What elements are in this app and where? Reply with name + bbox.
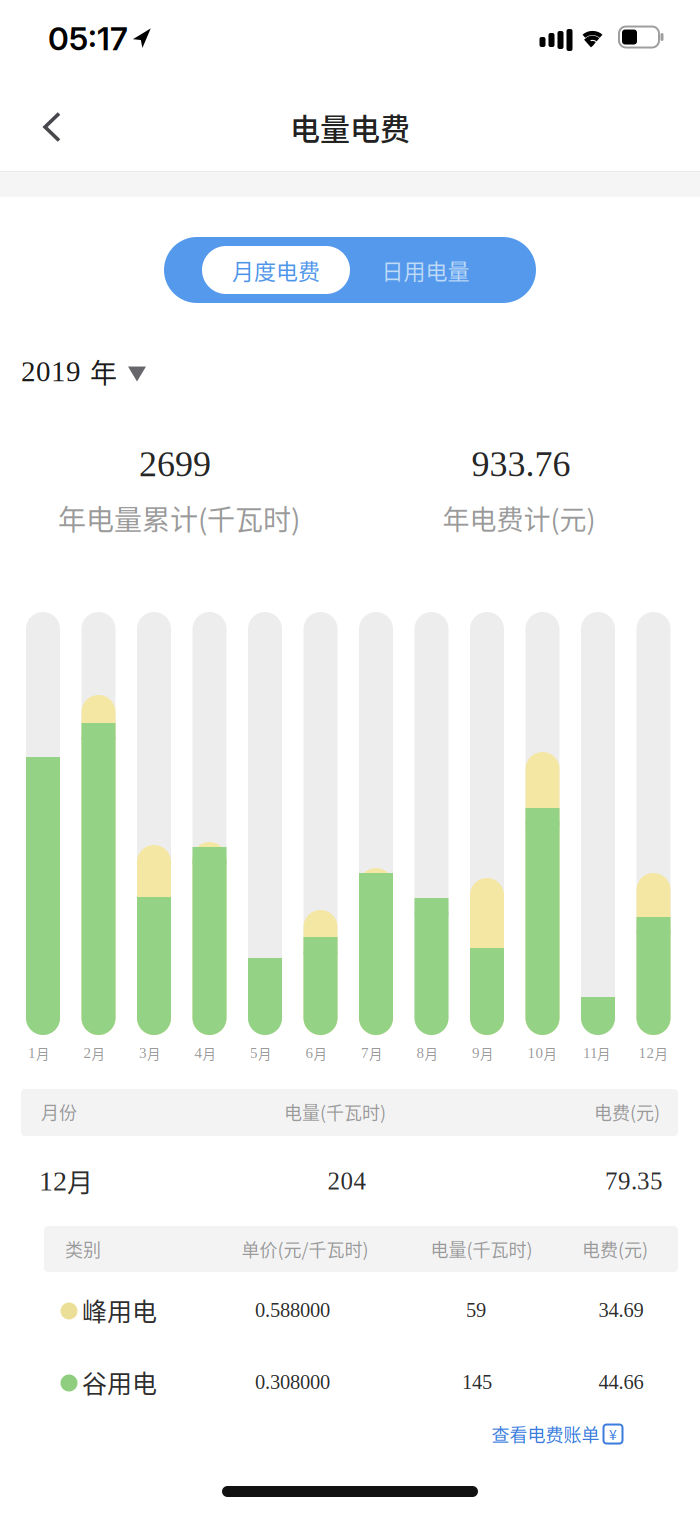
staticText: 月 <box>202 1043 215 1063</box>
staticText: 月 <box>369 1043 382 1063</box>
staticText: 电量(千瓦时) <box>284 1099 386 1125</box>
staticText: 月 <box>480 1043 493 1063</box>
button[interactable]: 查看电费账单 <box>491 1421 622 1447</box>
staticText: 查看电费账单 <box>491 1421 599 1447</box>
staticText: 4 <box>194 1045 202 1061</box>
staticText: 年电费计(元) <box>442 498 595 538</box>
staticText: 单价(元/千瓦时) <box>241 1236 368 1262</box>
button[interactable]: 日用电量 <box>351 246 499 294</box>
button[interactable]: 月度电费 <box>202 246 350 294</box>
staticText: 月 <box>543 1043 556 1063</box>
staticText: 月 <box>147 1043 160 1063</box>
staticText: 3 <box>139 1045 147 1061</box>
staticText: 9 <box>472 1045 480 1061</box>
staticText: 月份 <box>41 1099 77 1125</box>
staticText: 204 <box>327 1167 366 1195</box>
staticText: 7 <box>361 1045 369 1061</box>
staticText: 年电量累计(千瓦时) <box>58 498 300 538</box>
staticText: 月 <box>654 1043 667 1063</box>
staticText: 44.66 <box>598 1371 643 1393</box>
staticText: 日用电量 <box>381 254 469 286</box>
staticText: 电量(千瓦时) <box>430 1236 532 1262</box>
staticText: 年 <box>90 352 117 391</box>
staticText: 5 <box>250 1045 258 1061</box>
staticText: 0.588000 <box>255 1299 330 1321</box>
staticText: ¥ <box>609 1424 617 1444</box>
staticText: 0.308000 <box>255 1371 330 1393</box>
staticText: 电费(元) <box>582 1236 648 1262</box>
button[interactable] <box>0 95 83 158</box>
button[interactable]: 2019 <box>21 352 146 391</box>
staticText: 月 <box>67 1162 93 1200</box>
staticText: 145 <box>462 1371 492 1393</box>
staticText: 月 <box>313 1043 326 1063</box>
staticText: 12 <box>39 1165 67 1196</box>
staticText: 12 <box>638 1045 654 1061</box>
staticText: 谷用电 <box>82 1364 157 1400</box>
staticText: 6 <box>305 1045 313 1061</box>
staticText: 2699 <box>139 444 211 484</box>
staticText: 79.35 <box>605 1167 663 1195</box>
staticText: 月 <box>424 1043 437 1063</box>
staticText: 59 <box>466 1299 486 1321</box>
staticText: 2019 <box>21 355 81 387</box>
staticText: 1 <box>28 1045 36 1061</box>
staticText: 月 <box>91 1043 104 1063</box>
staticText: 11 <box>583 1045 597 1061</box>
staticText: 月 <box>36 1043 49 1063</box>
staticText: 34.69 <box>598 1299 643 1321</box>
staticText: 月度电费 <box>232 254 320 286</box>
staticText: 10 <box>527 1045 543 1061</box>
staticText: 类别 <box>65 1236 101 1262</box>
staticText: 电量电费 <box>290 105 410 149</box>
staticText: 933.76 <box>471 444 570 484</box>
staticText: 05:17 <box>48 19 128 58</box>
staticText: 2 <box>83 1045 91 1061</box>
staticText: 月 <box>597 1043 610 1063</box>
staticText: 8 <box>416 1045 424 1061</box>
staticText: 峰用电 <box>82 1292 157 1328</box>
staticText: 电费(元) <box>594 1099 660 1125</box>
staticText: 月 <box>258 1043 271 1063</box>
